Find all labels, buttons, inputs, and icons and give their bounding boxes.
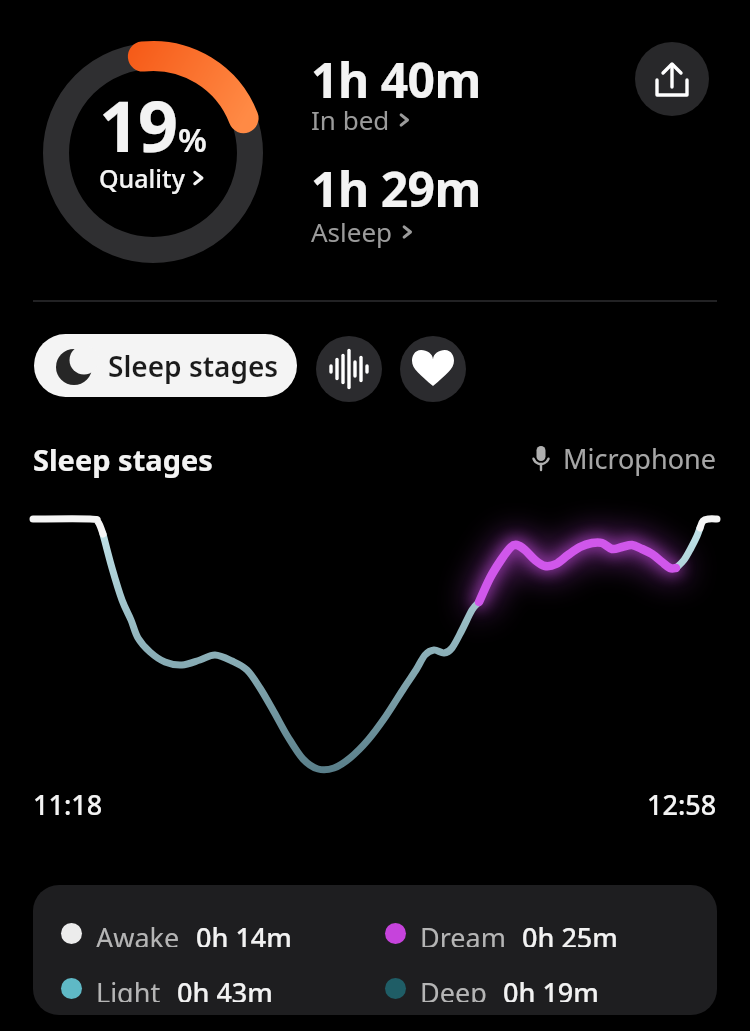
- button[interactable]: 19: [43, 43, 263, 263]
- staticText: Sleep stages: [108, 347, 279, 385]
- button[interactable]: Deep: [385, 974, 599, 1002]
- staticText: 0h 14m: [196, 919, 292, 947]
- button[interactable]: Awake: [61, 919, 292, 947]
- staticText: Microphone: [563, 440, 716, 477]
- staticText: 11:18: [33, 786, 103, 823]
- staticText: 1h 29m: [311, 156, 481, 221]
- staticText: %: [178, 117, 207, 162]
- staticText: 12:58: [647, 786, 717, 823]
- staticText: Asleep: [311, 214, 393, 249]
- button[interactable]: Dream: [385, 919, 618, 947]
- button[interactable]: Microphone: [529, 440, 716, 477]
- staticText: Sleep stages: [33, 440, 213, 479]
- staticText: 0h 19m: [503, 974, 599, 1002]
- button[interactable]: [635, 42, 709, 116]
- button[interactable]: Light: [61, 974, 273, 1002]
- staticText: 1h 40m: [311, 47, 481, 112]
- staticText: Light: [96, 974, 161, 1002]
- button[interactable]: Asleep: [311, 214, 415, 249]
- button[interactable]: [316, 336, 382, 402]
- staticText: Deep: [420, 974, 487, 1002]
- staticText: In bed: [311, 102, 390, 137]
- staticText: Awake: [96, 919, 180, 947]
- button[interactable]: [400, 336, 466, 402]
- button[interactable]: Sleep stages: [34, 334, 297, 397]
- staticText: 19: [99, 77, 178, 172]
- staticText: Quality: [99, 161, 185, 195]
- staticText: 0h 25m: [522, 919, 618, 947]
- staticText: Dream: [420, 919, 506, 947]
- button[interactable]: In bed: [311, 102, 412, 137]
- staticText: 0h 43m: [177, 974, 273, 1002]
